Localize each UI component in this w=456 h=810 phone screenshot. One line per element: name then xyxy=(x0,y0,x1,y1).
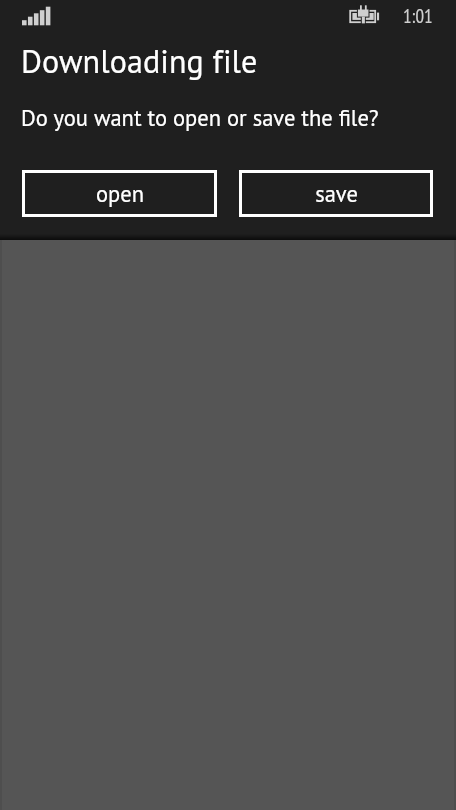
staticText: open xyxy=(96,179,144,208)
staticText: 1:01 xyxy=(403,4,433,29)
other: Signal strength xyxy=(22,6,51,26)
button[interactable]: open xyxy=(22,170,217,217)
staticText: Downloading file xyxy=(21,40,258,81)
staticText: Do you want to open or save the file? xyxy=(21,103,379,132)
button[interactable]: save xyxy=(239,170,433,217)
other: Battery charging xyxy=(348,4,381,26)
staticText: save xyxy=(315,179,358,208)
